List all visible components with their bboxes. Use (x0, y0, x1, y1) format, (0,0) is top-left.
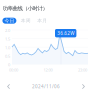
staticText: 00:00 (9, 67, 18, 73)
button[interactable]: 本月 (35, 18, 49, 24)
staticText: 36.62W (57, 30, 74, 36)
staticText: 1.0 (5, 45, 10, 50)
staticText: 本周 (21, 18, 31, 24)
button[interactable]: 上一天 (4, 81, 13, 92)
staticText: 12:00 (43, 67, 52, 73)
button[interactable]: 本周 (19, 18, 33, 24)
staticText: 功率曲线（小时计） (3, 5, 48, 12)
staticText: 2024/11/06 (32, 83, 60, 90)
staticText: 今日 (4, 18, 14, 24)
staticText: 1.5 (5, 36, 10, 42)
staticText: 2.0 (5, 28, 10, 33)
staticText: 本月 (37, 18, 47, 24)
button[interactable]: 今日 (2, 18, 16, 24)
staticText: 23:00 (78, 67, 87, 73)
button[interactable]: 下一天 (79, 81, 88, 92)
staticText: 0.5 (5, 53, 10, 59)
staticText: 0 (8, 62, 10, 67)
